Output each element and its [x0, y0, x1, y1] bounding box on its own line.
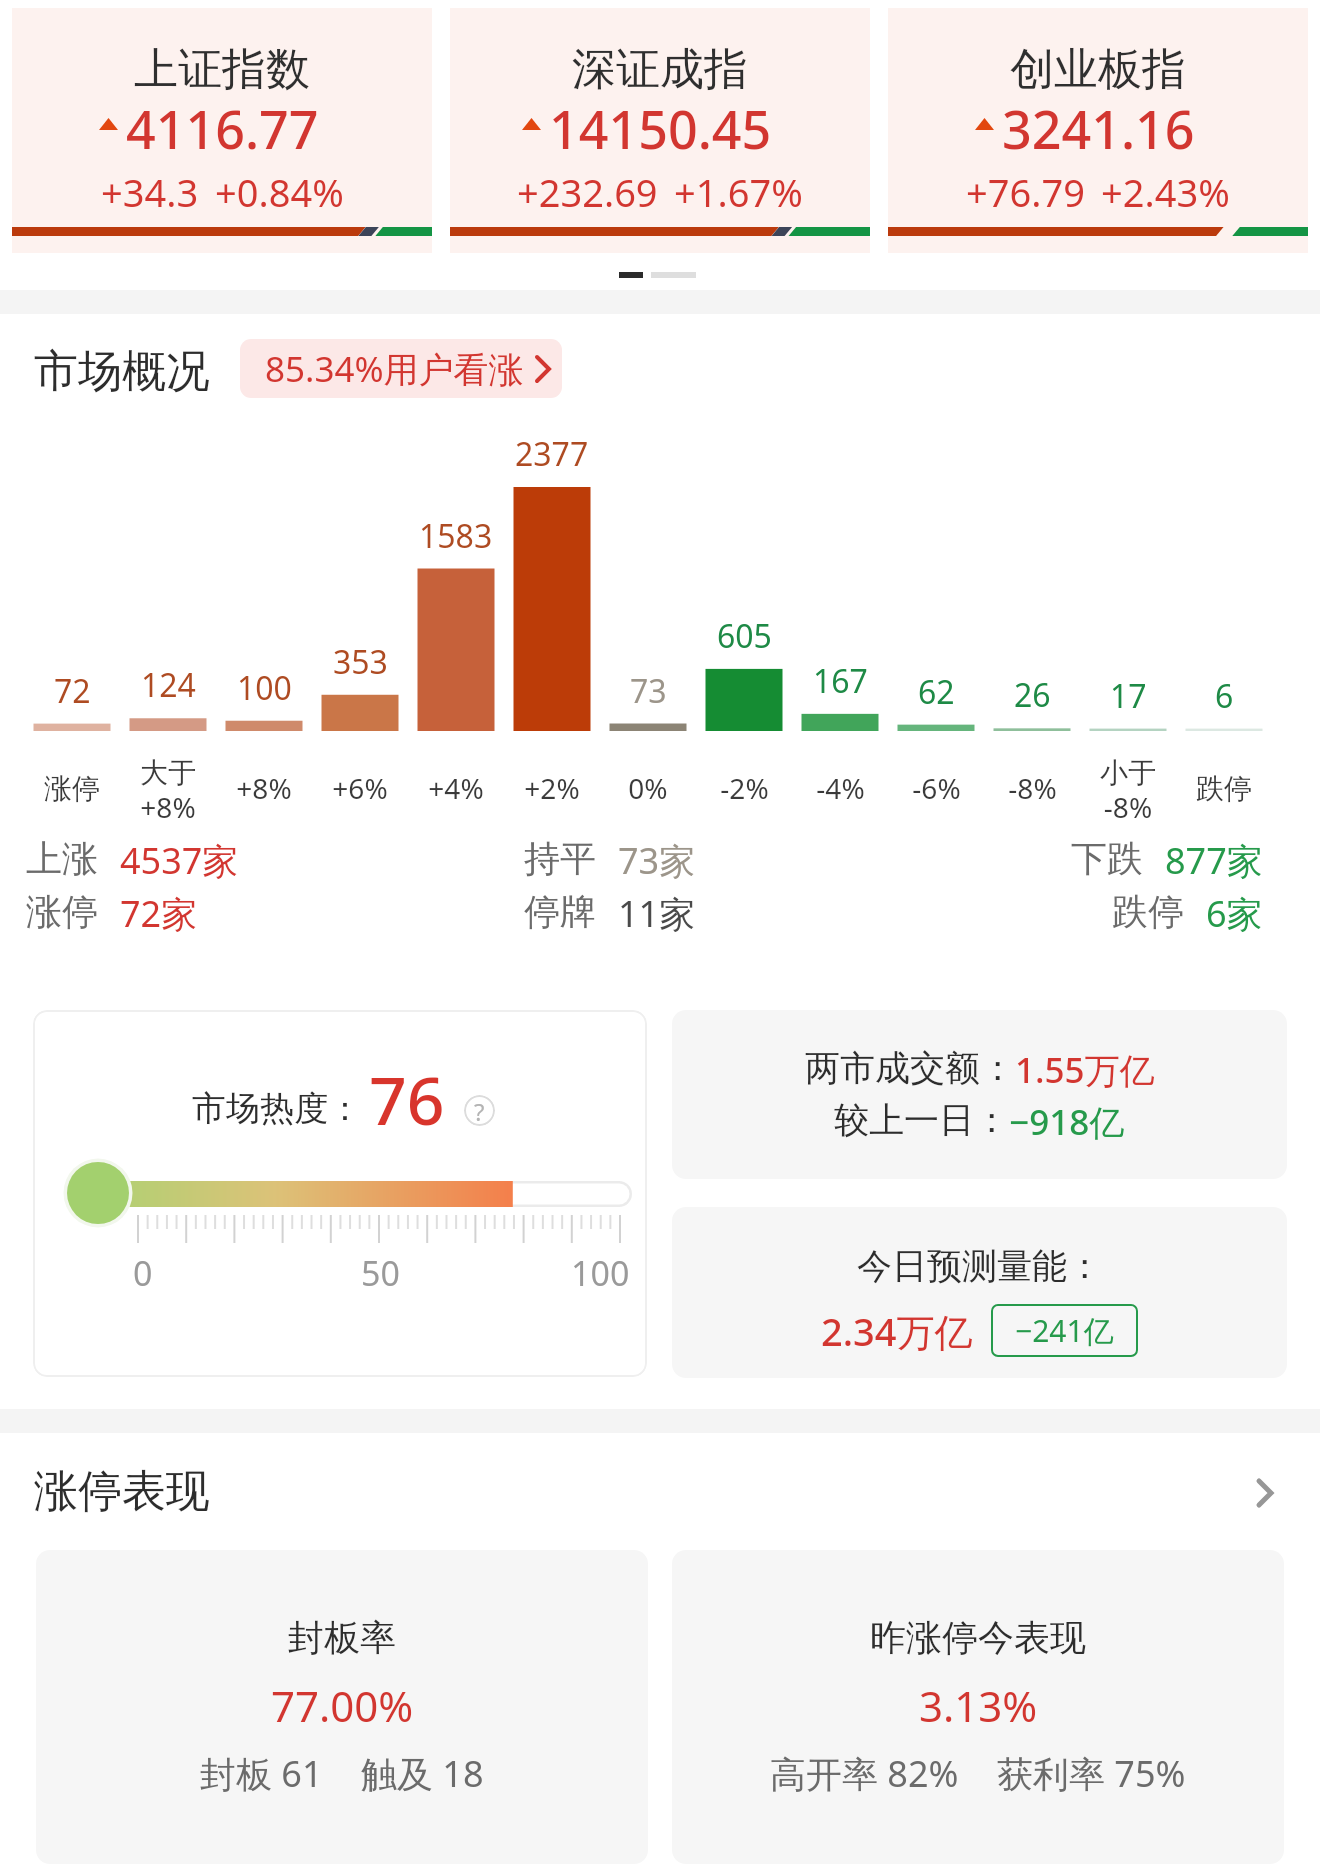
button[interactable]: 市场热度： — [33, 1010, 647, 1377]
staticText: 涨停 — [44, 771, 100, 806]
staticText: -8% — [1008, 769, 1057, 807]
staticText: 76 — [369, 1054, 445, 1144]
staticText: +232.69 — [517, 166, 658, 218]
staticText: 涨停 — [26, 889, 98, 934]
staticText: 124 — [141, 663, 196, 707]
staticText: 100 — [571, 1250, 630, 1296]
staticText: 72家 — [120, 889, 198, 938]
staticText: 较上一日： — [834, 1098, 1009, 1142]
staticText: +1.67% — [674, 166, 803, 218]
staticText: 市场概况 — [34, 344, 210, 399]
staticText: 11家 — [618, 889, 696, 938]
button[interactable]: 85.34%用户看涨 — [240, 339, 562, 398]
staticText: 14150.45 — [549, 93, 772, 164]
staticText: 77.00% — [271, 1677, 414, 1734]
staticText: 85.34%用户看涨 — [265, 345, 524, 393]
staticText: −241亿 — [1015, 1310, 1114, 1351]
staticText: 4116.77 — [126, 93, 319, 164]
staticText: 1583 — [419, 514, 493, 558]
button[interactable]: 帮助 — [464, 1095, 495, 1126]
staticText: 跌停 — [1196, 771, 1252, 806]
staticText: 跌停 — [1112, 889, 1184, 934]
staticText: 50 — [361, 1250, 400, 1296]
staticText: -4% — [816, 769, 865, 807]
staticText: +4% — [428, 769, 484, 807]
staticText: 封板 61 — [200, 1749, 323, 1798]
button[interactable]: 创业板指 — [888, 8, 1308, 253]
staticText: +8% — [236, 769, 292, 807]
staticText: 6家 — [1206, 889, 1263, 938]
staticText: +2.43% — [1101, 166, 1230, 218]
button[interactable]: 两市成交额： — [672, 1010, 1287, 1179]
staticText: 73 — [630, 669, 667, 713]
button[interactable]: 深证成指 — [450, 8, 870, 253]
staticText: 深证成指 — [572, 42, 748, 97]
staticText: 2377 — [515, 432, 589, 476]
staticText: 持平 — [524, 836, 596, 881]
staticText: +34.3 — [101, 166, 199, 218]
staticText: 6 — [1215, 674, 1234, 718]
staticText: −918亿 — [1009, 1098, 1125, 1146]
staticText: 两市成交额： — [805, 1046, 1015, 1090]
staticText: 触及 18 — [361, 1749, 484, 1798]
staticText: 大于 +8% — [140, 755, 196, 821]
staticText: +76.79 — [966, 166, 1085, 218]
staticText: 涨停表现 — [34, 1464, 210, 1519]
staticText: 0 — [133, 1250, 153, 1296]
staticText: 获利率 75% — [997, 1749, 1186, 1798]
staticText: 605 — [717, 614, 772, 658]
staticText: 0% — [628, 769, 668, 807]
staticText: 上证指数 — [134, 42, 310, 97]
staticText: +2% — [524, 769, 580, 807]
staticText: +6% — [332, 769, 388, 807]
staticText: 3.13% — [919, 1677, 1038, 1734]
staticText: 上涨 — [26, 836, 98, 881]
staticText: +0.84% — [215, 166, 344, 218]
staticText: 4537家 — [120, 836, 239, 885]
staticText: 877家 — [1165, 836, 1263, 885]
staticText: 小于 -8% — [1100, 755, 1156, 821]
staticText: ? — [474, 1095, 485, 1126]
staticText: 2.34万亿 — [821, 1305, 973, 1357]
staticText: 今日预测量能： — [857, 1244, 1102, 1288]
button[interactable]: 今日预测量能： — [672, 1207, 1287, 1378]
staticText: 1.55万亿 — [1015, 1046, 1155, 1094]
staticText: 创业板指 — [1010, 42, 1186, 97]
button[interactable]: 上证指数 — [12, 8, 432, 253]
staticText: 封板率 — [288, 1615, 396, 1660]
staticText: 167 — [813, 659, 868, 703]
staticText: 3241.16 — [1002, 93, 1195, 164]
staticText: 73家 — [618, 836, 696, 885]
staticText: 17 — [1110, 674, 1147, 718]
staticText: 353 — [333, 640, 388, 684]
staticText: 市场热度： — [192, 1087, 362, 1130]
button[interactable]: 昨涨停今表现 — [672, 1550, 1284, 1864]
staticText: 高开率 82% — [770, 1749, 959, 1798]
staticText: 26 — [1014, 673, 1051, 717]
staticText: 100 — [237, 666, 292, 710]
staticText: 昨涨停今表现 — [870, 1615, 1086, 1660]
button[interactable]: 更多 — [1240, 1468, 1290, 1518]
staticText: -2% — [720, 769, 769, 807]
staticText: 72 — [54, 669, 91, 713]
button[interactable]: 封板率 — [36, 1550, 648, 1864]
staticText: 下跌 — [1071, 836, 1143, 881]
staticText: 停牌 — [524, 889, 596, 934]
staticText: 62 — [918, 670, 955, 714]
staticText: -6% — [912, 769, 961, 807]
